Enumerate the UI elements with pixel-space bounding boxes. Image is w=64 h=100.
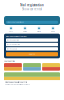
staticText: Pick-up location bbox=[9, 39, 19, 41]
staticText: Your next ride bbox=[4, 60, 15, 62]
staticText: Deals bbox=[51, 31, 55, 32]
button[interactable]: Flights bbox=[32, 26, 46, 32]
button[interactable] bbox=[4, 63, 22, 71]
button[interactable]: Where do you want to go? bbox=[6, 21, 58, 24]
staticText: Hotels bbox=[23, 31, 27, 32]
button[interactable]: Cars bbox=[4, 26, 18, 32]
button[interactable]: Deals bbox=[46, 26, 60, 32]
staticText: Cars bbox=[9, 31, 13, 32]
staticText: Search bbox=[29, 53, 35, 55]
button[interactable]: Search bbox=[6, 52, 58, 56]
button[interactable]: Pick-up date bbox=[6, 47, 58, 51]
staticText: Show car rental bbox=[22, 7, 42, 11]
button[interactable]: Pick-up location bbox=[6, 38, 58, 42]
staticText: Drop-off location bbox=[9, 44, 20, 45]
staticText: Trial registration bbox=[20, 3, 44, 7]
button[interactable]: Hotels bbox=[18, 26, 32, 32]
staticText: Where do you want to go? bbox=[7, 21, 24, 23]
button[interactable] bbox=[42, 63, 60, 71]
button[interactable]: Find the best deal for your trip bbox=[4, 72, 60, 86]
staticText: Where do you want to drive? bbox=[6, 36, 27, 37]
staticText: Compare prices from top providers bbox=[5, 84, 30, 85]
staticText: Flights bbox=[37, 31, 41, 32]
button[interactable]: Drop-off location bbox=[6, 43, 58, 46]
staticText: Pick-up date bbox=[9, 48, 17, 50]
staticText: Find the best deal for your trip bbox=[5, 81, 27, 83]
button[interactable] bbox=[23, 63, 41, 71]
